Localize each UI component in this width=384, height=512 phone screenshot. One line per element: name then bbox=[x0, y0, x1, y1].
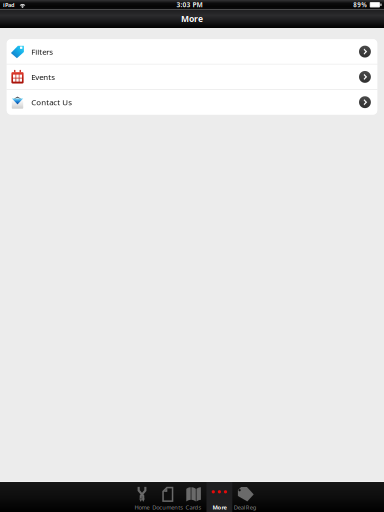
button[interactable]: Deal Reg bbox=[232, 482, 258, 512]
staticText: Contact Us bbox=[31, 97, 72, 107]
staticText: Filters bbox=[31, 46, 53, 57]
button[interactable]: Filters bbox=[7, 39, 377, 64]
button[interactable]: Home bbox=[129, 482, 155, 512]
button[interactable]: Cards bbox=[181, 482, 206, 512]
staticText: More bbox=[181, 13, 203, 24]
staticText: More bbox=[212, 503, 226, 511]
staticText: Cards bbox=[186, 503, 202, 511]
staticText: 3:03 PM bbox=[177, 0, 203, 9]
button[interactable]: More bbox=[206, 482, 232, 512]
staticText: Home bbox=[134, 503, 149, 511]
button[interactable]: Documents bbox=[155, 482, 181, 512]
staticText: Events bbox=[31, 71, 55, 82]
staticText: Deal Reg bbox=[234, 503, 257, 511]
staticText: iPad bbox=[3, 1, 15, 8]
staticText: Documents bbox=[152, 503, 183, 511]
button[interactable]: Events bbox=[7, 65, 377, 89]
staticText: 89% bbox=[353, 1, 367, 9]
button[interactable]: Contact Us bbox=[7, 90, 377, 114]
